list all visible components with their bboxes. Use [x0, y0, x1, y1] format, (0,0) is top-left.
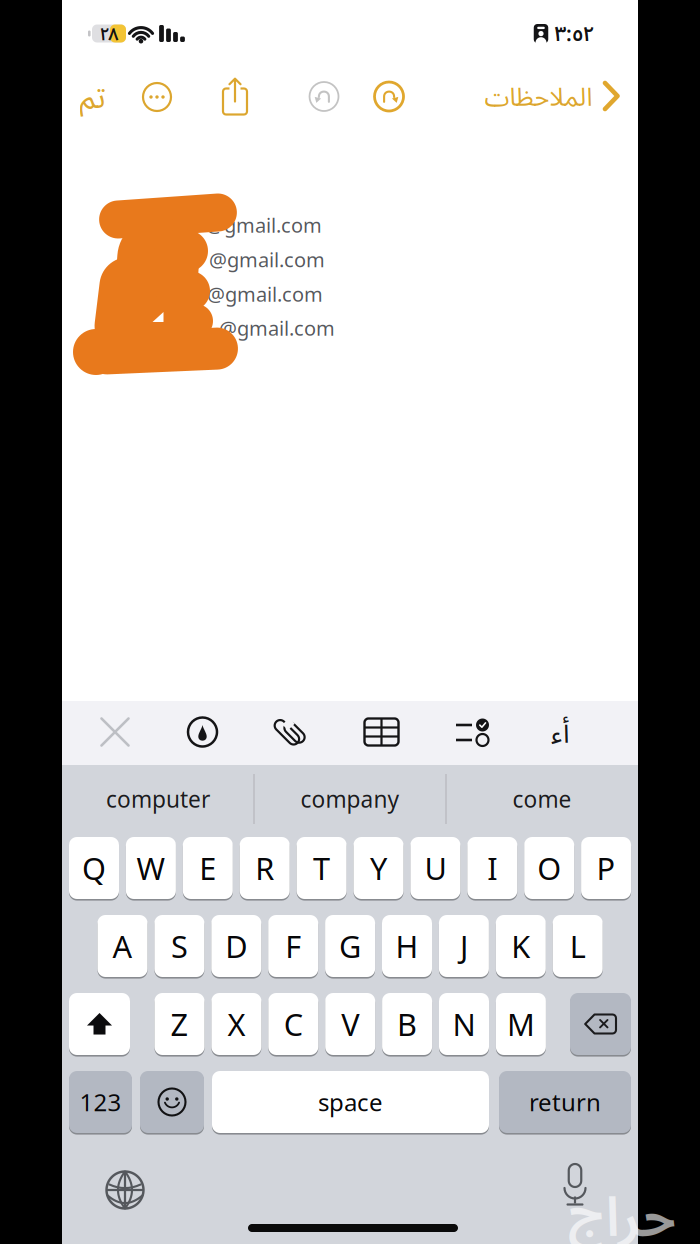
staticText: أء [550, 713, 569, 751]
staticText: W [136, 848, 165, 888]
button[interactable]: Dismiss keyboard [93, 705, 137, 759]
staticText: B [397, 1004, 417, 1044]
button[interactable]: Back to Notes [440, 74, 620, 118]
button[interactable]: computer [68, 767, 248, 831]
button[interactable]: D [211, 914, 261, 978]
staticText: R [255, 848, 274, 888]
button[interactable]: Redo [367, 74, 411, 118]
staticText: I [487, 848, 497, 888]
button[interactable]: Q [69, 836, 119, 900]
button[interactable]: Z [154, 992, 204, 1056]
staticText: @gmail.com [206, 212, 322, 238]
button[interactable]: A [97, 914, 147, 978]
staticText: ٢٨ [100, 22, 119, 45]
button[interactable]: T [297, 836, 347, 900]
staticText: company [300, 784, 399, 814]
button[interactable] [570, 992, 631, 1056]
button[interactable]: Table [359, 705, 403, 759]
button[interactable]: K [496, 914, 546, 978]
staticText: تم [79, 75, 105, 117]
button[interactable]: Next keyboard [103, 1168, 147, 1212]
button[interactable]: space [212, 1070, 489, 1134]
staticText: @gmail.com [219, 315, 335, 341]
button[interactable]: W [126, 836, 176, 900]
staticText: 123 [79, 1086, 121, 1118]
staticText: P [597, 848, 616, 888]
staticText: U [424, 848, 446, 888]
button[interactable]: X [211, 992, 261, 1056]
staticText: الملاحظات [484, 79, 592, 113]
staticText: A [112, 926, 132, 966]
button[interactable]: R [240, 836, 290, 900]
staticText: return [529, 1086, 601, 1118]
staticText: V [341, 1004, 359, 1044]
button[interactable]: O [524, 836, 574, 900]
button[interactable]: 123 [69, 1070, 132, 1134]
button[interactable]: company [260, 767, 440, 831]
button[interactable]: G [325, 914, 375, 978]
staticText: F [285, 926, 301, 966]
button[interactable]: Y [353, 836, 403, 900]
button[interactable]: تم [66, 74, 118, 118]
staticText: ٣:٥٢ [554, 19, 594, 47]
staticText: N [452, 1004, 475, 1044]
staticText: C [284, 1004, 303, 1044]
staticText: computer [106, 784, 210, 814]
button[interactable]: come [452, 767, 632, 831]
button[interactable] [140, 1070, 204, 1134]
staticText: O [537, 848, 561, 888]
staticText: T [313, 848, 330, 888]
staticText: S [171, 926, 188, 966]
staticText: G [339, 926, 361, 966]
button[interactable]: J [439, 914, 489, 978]
button[interactable]: M [496, 992, 546, 1056]
staticText: M [507, 1004, 535, 1044]
staticText: X [227, 1004, 245, 1044]
staticText: J [460, 926, 468, 966]
staticText: L [570, 926, 586, 966]
button[interactable]: E [183, 836, 233, 900]
button[interactable]: U [410, 836, 460, 900]
button[interactable]: C [268, 992, 318, 1056]
button[interactable]: V [325, 992, 375, 1056]
button[interactable]: N [439, 992, 489, 1056]
button[interactable]: Checklist [450, 705, 494, 759]
staticText: E [199, 848, 216, 888]
button[interactable]: Markup [180, 705, 224, 759]
button[interactable]: Share [213, 74, 257, 118]
staticText: H [395, 926, 418, 966]
button[interactable]: P [581, 836, 631, 900]
staticText: D [225, 926, 247, 966]
button[interactable]: L [553, 914, 603, 978]
button[interactable]: More [135, 75, 179, 119]
button[interactable]: H [382, 914, 432, 978]
staticText: @gmail.com [207, 281, 323, 307]
button[interactable]: F [268, 914, 318, 978]
button[interactable]: S [154, 914, 204, 978]
button[interactable]: Undo [302, 74, 346, 118]
button[interactable]: I [467, 836, 517, 900]
staticText: come [512, 784, 571, 814]
button[interactable]: Attach [268, 705, 312, 759]
button[interactable]: Dictate [553, 1161, 597, 1209]
button[interactable]: Format [538, 705, 582, 759]
staticText: space [318, 1086, 383, 1118]
button[interactable]: B [382, 992, 432, 1056]
staticText: Q [82, 848, 106, 888]
button[interactable] [69, 992, 130, 1056]
staticText: Z [170, 1004, 188, 1044]
button[interactable]: return [499, 1070, 631, 1134]
staticText: K [511, 926, 530, 966]
staticText: حراج [568, 1178, 676, 1244]
staticText: @gmail.com [209, 246, 325, 273]
staticText: Y [370, 848, 387, 888]
